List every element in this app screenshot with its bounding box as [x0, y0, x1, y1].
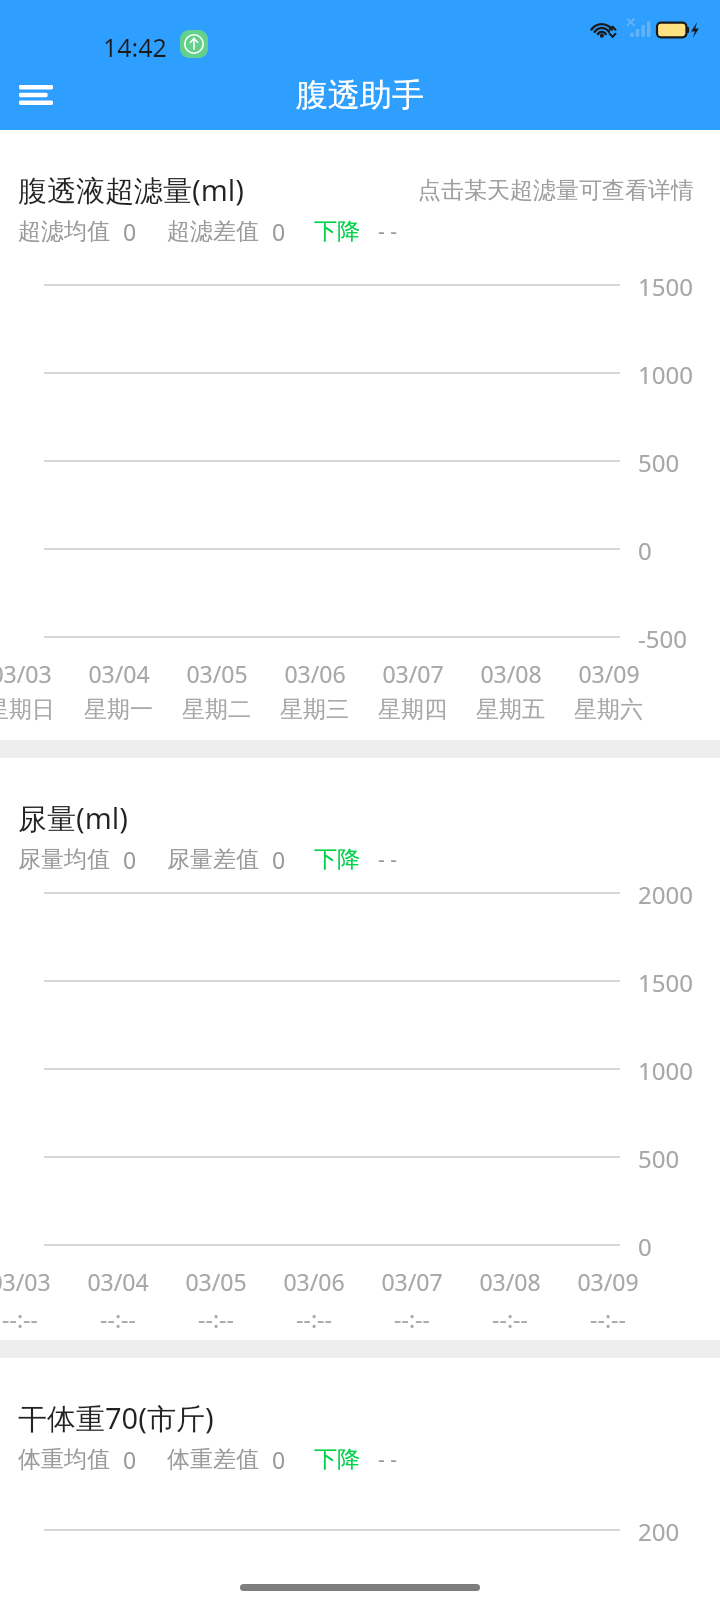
button[interactable]: Menu: [8, 67, 64, 123]
staticText: --:--: [492, 1303, 528, 1334]
staticText: 星期四: [378, 695, 447, 724]
staticText: --:--: [100, 1303, 136, 1334]
staticText: --:--: [590, 1303, 626, 1334]
staticText: 尿量均值: [18, 845, 110, 874]
staticText: 03/08: [479, 1266, 541, 1297]
staticText: 200: [638, 1515, 680, 1548]
staticText: - -: [378, 217, 397, 246]
staticText: 星期三: [280, 695, 349, 724]
staticText: 下降: [314, 845, 360, 874]
staticText: 0: [272, 844, 286, 875]
staticText: 03/04: [88, 658, 150, 689]
staticText: 星期日: [0, 695, 55, 724]
staticText: --:--: [296, 1303, 332, 1334]
staticText: 点击某天超滤量可查看详情: [418, 176, 694, 205]
staticText: 星期五: [476, 695, 545, 724]
staticText: 0: [638, 1230, 652, 1263]
staticText: 0: [272, 1444, 286, 1475]
button[interactable]: 尿量(ml): [0, 758, 720, 1340]
staticText: 0: [272, 216, 286, 247]
staticText: 03/09: [577, 1266, 639, 1297]
staticText: 03/05: [185, 1266, 247, 1297]
staticText: --:--: [2, 1303, 38, 1334]
staticText: 干体重70(市斤): [18, 1398, 214, 1438]
staticText: 1500: [638, 966, 693, 999]
staticText: -500: [638, 622, 687, 655]
staticText: 03/08: [480, 658, 542, 689]
staticText: 0: [123, 216, 137, 247]
staticText: 星期一: [84, 695, 153, 724]
staticText: 2000: [638, 878, 693, 911]
staticText: 500: [638, 446, 680, 479]
staticText: 03/04: [87, 1266, 149, 1297]
staticText: 体重均值: [18, 1445, 110, 1474]
staticText: 尿量(ml): [18, 798, 128, 838]
staticText: 500: [638, 1142, 680, 1175]
button[interactable]: 干体重70(市斤): [0, 1358, 720, 1600]
staticText: 14:42: [103, 30, 167, 64]
staticText: 超滤差值: [167, 217, 259, 246]
staticText: 1000: [638, 1054, 693, 1087]
staticText: 尿量差值: [167, 845, 259, 874]
staticText: 星期二: [182, 695, 251, 724]
staticText: 星期六: [574, 695, 643, 724]
staticText: 03/03: [0, 1266, 51, 1297]
staticText: 1500: [638, 270, 693, 303]
staticText: 03/09: [578, 658, 640, 689]
staticText: 0: [123, 844, 137, 875]
staticText: 03/06: [284, 658, 346, 689]
staticText: 体重差值: [167, 1445, 259, 1474]
staticText: 03/07: [381, 1266, 443, 1297]
staticText: 03/06: [283, 1266, 345, 1297]
staticText: 下降: [314, 217, 360, 246]
staticText: --:--: [394, 1303, 430, 1334]
staticText: 下降: [314, 1445, 360, 1474]
staticText: 03/05: [186, 658, 248, 689]
staticText: --:--: [198, 1303, 234, 1334]
button[interactable]: 腹透液超滤量(ml): [0, 130, 720, 740]
staticText: 0: [123, 1444, 137, 1475]
staticText: - -: [378, 845, 397, 874]
staticText: 腹透助手: [296, 75, 424, 115]
staticText: 03/03: [0, 658, 52, 689]
staticText: 0: [638, 534, 652, 567]
staticText: 1000: [638, 358, 693, 391]
staticText: 腹透液超滤量(ml): [18, 170, 244, 210]
staticText: - -: [378, 1445, 397, 1474]
staticText: 超滤均值: [18, 217, 110, 246]
staticText: 03/07: [382, 658, 444, 689]
